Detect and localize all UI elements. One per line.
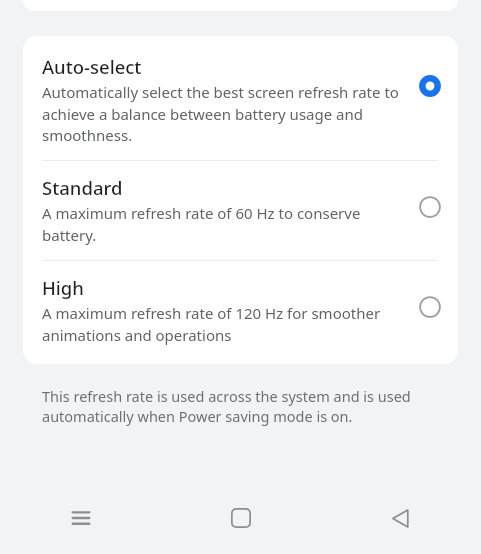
staticText: A maximum refresh rate of 60 Hz to conse… bbox=[42, 203, 408, 245]
button[interactable]: Select High bbox=[410, 287, 450, 327]
staticText: A maximum refresh rate of 120 Hz for smo… bbox=[42, 303, 408, 345]
button[interactable]: Home bbox=[161, 482, 321, 554]
button[interactable]: Back bbox=[321, 482, 481, 554]
button[interactable]: Auto-select bbox=[23, 40, 458, 160]
button[interactable]: Select Standard bbox=[410, 187, 450, 227]
button[interactable]: Standard bbox=[23, 161, 458, 260]
staticText: Standard bbox=[42, 175, 123, 200]
button[interactable]: Recent apps bbox=[0, 482, 161, 554]
button[interactable]: High bbox=[23, 261, 458, 360]
staticText: High bbox=[42, 275, 84, 300]
staticText: Auto-select bbox=[42, 54, 142, 79]
button[interactable]: Auto-select selected bbox=[410, 66, 450, 106]
staticText: Automatically select the best screen ref… bbox=[42, 82, 408, 145]
staticText: This refresh rate is used across the sys… bbox=[42, 386, 445, 427]
